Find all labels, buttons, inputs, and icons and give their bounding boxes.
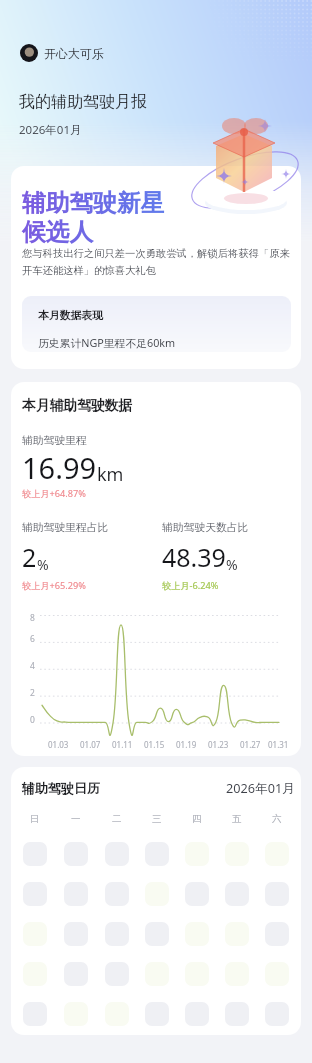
staticText: 2 [22, 540, 37, 574]
staticText: 较上月+64.87% [22, 487, 86, 500]
staticText: 较上月-6.24% [162, 579, 219, 592]
staticText: 您与科技出行之间只差一次勇敢尝试，解锁后将获得「原来开车还能这样」的惊喜大礼包 [22, 247, 291, 277]
button[interactable] [64, 842, 88, 866]
staticText: 我的辅助驾驶月报 [19, 92, 147, 112]
staticText: 2026年01月 [19, 122, 82, 138]
staticText: 辅助驾驶里程 [22, 434, 87, 448]
button[interactable] [265, 922, 289, 946]
staticText: 辅助驾驶天数占比 [162, 521, 249, 535]
staticText: 2 [30, 687, 35, 699]
staticText: 01.03 [48, 739, 69, 750]
staticText: 辅助驾驶里程占比 [22, 521, 109, 535]
staticText: 历史累计NGP里程不足60km [38, 335, 176, 350]
button[interactable] [225, 882, 249, 906]
staticText: 16.99 [22, 448, 97, 487]
staticText: 二 [112, 813, 122, 825]
staticText: % [37, 555, 49, 574]
staticText: 本月辅助驾驶数据 [22, 397, 133, 414]
button[interactable] [265, 842, 289, 866]
button[interactable] [23, 962, 47, 986]
staticText: 日 [30, 813, 40, 825]
button[interactable] [105, 1002, 129, 1026]
button[interactable] [225, 962, 249, 986]
staticText: 01.31 [268, 739, 289, 750]
button[interactable] [64, 882, 88, 906]
staticText: 开心大可乐 [44, 46, 104, 61]
button[interactable] [265, 962, 289, 986]
button[interactable] [145, 882, 169, 906]
button[interactable] [185, 882, 209, 906]
button[interactable] [185, 962, 209, 986]
staticText: 本月数据表现 [38, 309, 103, 323]
button[interactable] [185, 842, 209, 866]
button[interactable] [23, 842, 47, 866]
staticText: 01.15 [144, 739, 165, 750]
staticText: 辅助驾驶新星 候选人 [22, 188, 165, 247]
button[interactable] [105, 882, 129, 906]
button[interactable] [105, 842, 129, 866]
button[interactable] [64, 922, 88, 946]
button[interactable] [225, 922, 249, 946]
button[interactable] [105, 962, 129, 986]
staticText: 较上月+65.29% [22, 579, 86, 592]
staticText: 01.11 [112, 739, 133, 750]
staticText: 五 [232, 813, 242, 825]
button[interactable] [225, 1002, 249, 1026]
button[interactable]: 开心大可乐 [20, 44, 104, 62]
staticText: 2026年01月 [226, 779, 295, 796]
button[interactable] [105, 922, 129, 946]
staticText: 一 [71, 813, 81, 825]
staticText: km [97, 462, 124, 487]
staticText: 四 [192, 813, 202, 825]
button[interactable] [265, 882, 289, 906]
button[interactable] [225, 842, 249, 866]
button[interactable] [145, 842, 169, 866]
staticText: 4 [30, 660, 35, 672]
staticText: % [226, 555, 238, 574]
staticText: 01.07 [80, 739, 101, 750]
staticText: 6 [30, 633, 35, 645]
button[interactable] [265, 1002, 289, 1026]
staticText: 0 [30, 714, 35, 726]
staticText: 8 [30, 612, 35, 624]
staticText: 01.27 [240, 739, 261, 750]
staticText: 01.23 [208, 739, 229, 750]
button[interactable] [64, 1002, 88, 1026]
button[interactable] [185, 1002, 209, 1026]
staticText: 01.19 [176, 739, 197, 750]
button[interactable] [145, 962, 169, 986]
staticText: 三 [152, 813, 162, 825]
button[interactable] [185, 922, 209, 946]
button[interactable] [64, 962, 88, 986]
button[interactable] [23, 922, 47, 946]
button[interactable] [23, 1002, 47, 1026]
staticText: 辅助驾驶日历 [22, 780, 100, 796]
staticText: 48.39 [162, 540, 226, 574]
button[interactable] [23, 882, 47, 906]
button[interactable] [145, 1002, 169, 1026]
button[interactable] [145, 922, 169, 946]
staticText: 六 [272, 813, 282, 825]
